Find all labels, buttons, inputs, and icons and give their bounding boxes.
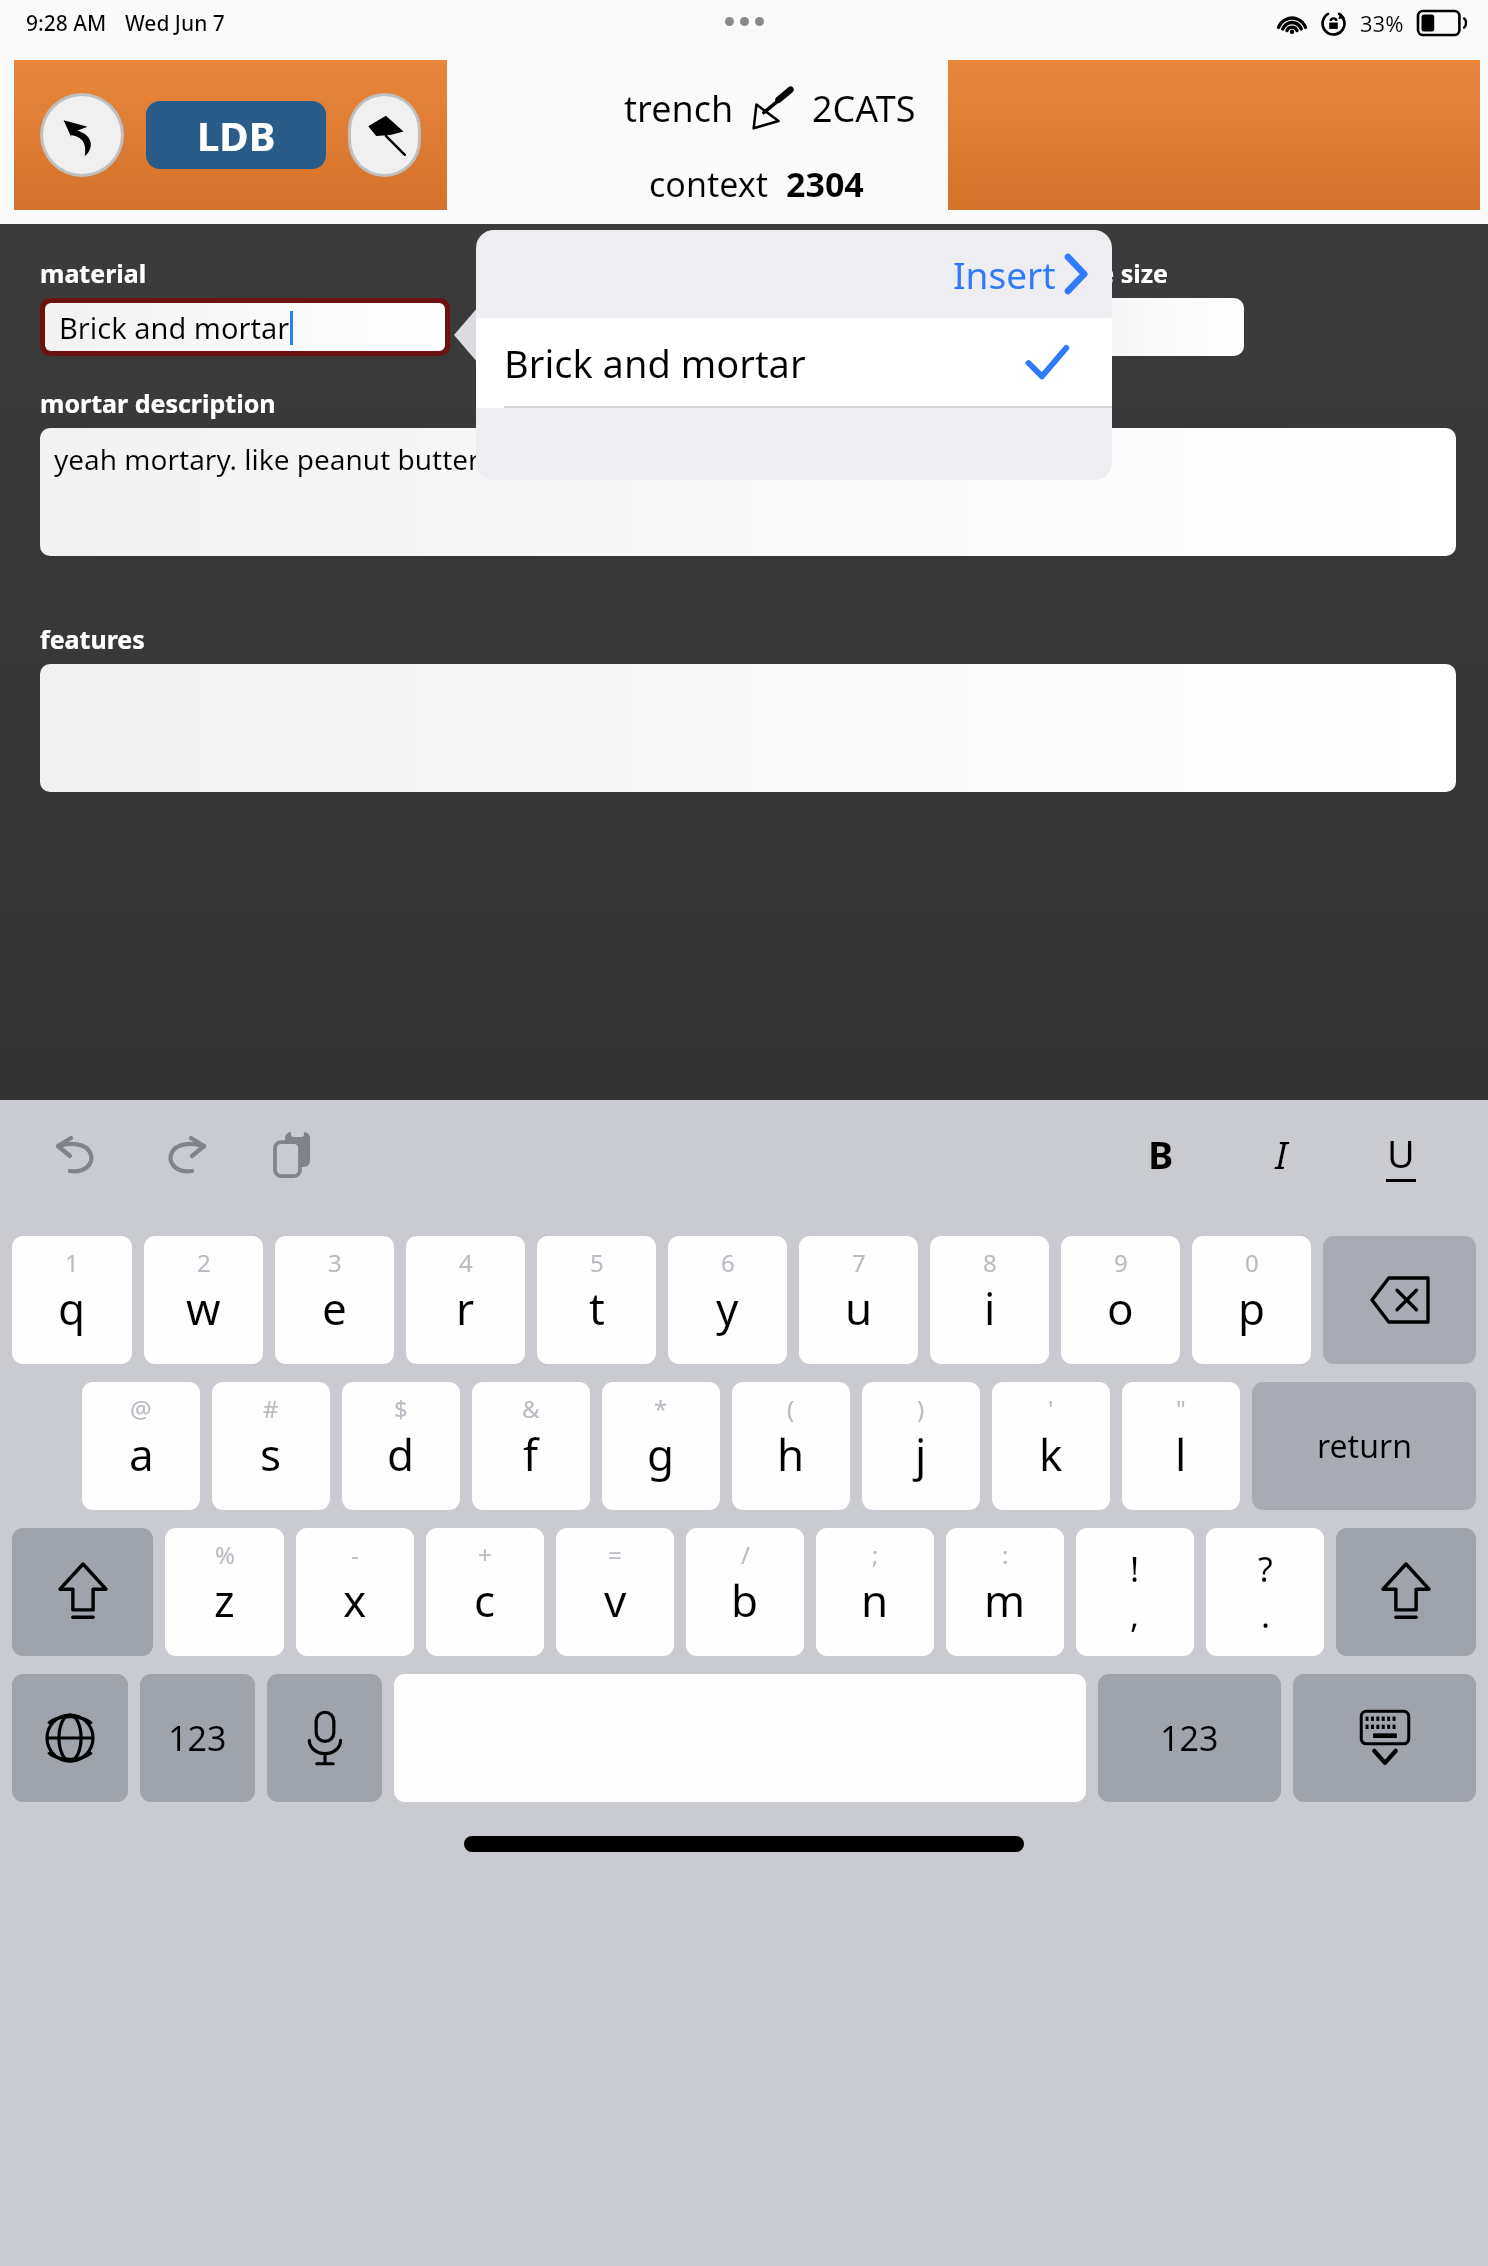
- staticText: q: [58, 1278, 86, 1338]
- button[interactable]: Pin: [351, 96, 418, 174]
- button[interactable]: ): [862, 1382, 980, 1510]
- staticText: g: [647, 1424, 675, 1484]
- staticText: 2: [197, 1246, 211, 1279]
- button[interactable]: 4: [406, 1236, 525, 1364]
- staticText: u: [845, 1278, 873, 1338]
- staticText: x: [343, 1570, 367, 1630]
- button[interactable]: ;: [816, 1528, 934, 1656]
- button[interactable]: [936, 298, 1036, 356]
- button[interactable]: Hide keyboard: [1293, 1674, 1476, 1802]
- staticText: stone size: [1044, 256, 1168, 290]
- staticText: w: [186, 1278, 221, 1338]
- button[interactable]: Undo: [46, 1123, 108, 1185]
- button[interactable]: Insert: [953, 249, 1086, 299]
- button[interactable]: [1044, 298, 1244, 356]
- staticText: features: [40, 622, 145, 656]
- button[interactable]: #: [212, 1382, 330, 1510]
- staticText: 0: [1245, 1246, 1259, 1279]
- staticText: ?: [1258, 1546, 1273, 1592]
- staticText: 2304: [786, 161, 864, 207]
- button[interactable]: :: [946, 1528, 1064, 1656]
- button[interactable]: LDB: [146, 101, 326, 169]
- staticText: U: [1387, 1127, 1415, 1179]
- button[interactable]: =: [556, 1528, 674, 1656]
- staticText: -: [351, 1538, 359, 1571]
- staticText: !: [1130, 1546, 1140, 1592]
- button[interactable]: 1: [12, 1236, 132, 1364]
- button[interactable]: 5: [537, 1236, 656, 1364]
- staticText: yeah mortary. like peanut butter: [54, 440, 480, 478]
- staticText: :: [1002, 1538, 1009, 1571]
- button[interactable]: B: [1130, 1123, 1192, 1185]
- button[interactable]: [40, 664, 1456, 792]
- button[interactable]: 7: [799, 1236, 918, 1364]
- button[interactable]: Brick and mortar: [476, 318, 1112, 408]
- staticText: *: [654, 1392, 668, 1425]
- button[interactable]: Paste: [262, 1123, 324, 1185]
- button[interactable]: ': [992, 1382, 1110, 1510]
- button[interactable]: @: [82, 1382, 200, 1510]
- staticText: v: [604, 1570, 627, 1630]
- staticText: 8: [983, 1246, 997, 1279]
- staticText: 9: [1114, 1246, 1128, 1279]
- button[interactable]: Redo: [154, 1123, 216, 1185]
- button[interactable]: I: [1250, 1123, 1312, 1185]
- button[interactable]: U: [1370, 1123, 1432, 1185]
- staticText: f: [523, 1424, 539, 1484]
- button[interactable]: 6: [668, 1236, 787, 1364]
- button[interactable]: Numbers: [1098, 1674, 1281, 1802]
- button[interactable]: [478, 298, 908, 356]
- button[interactable]: Shift: [1336, 1528, 1476, 1656]
- button[interactable]: $: [342, 1382, 460, 1510]
- button[interactable]: 9: [1061, 1236, 1180, 1364]
- staticText: h: [777, 1424, 805, 1484]
- staticText: +: [478, 1538, 492, 1571]
- staticText: Brick and mortar: [59, 308, 290, 347]
- button[interactable]: !: [1076, 1528, 1194, 1656]
- staticText: i: [984, 1278, 996, 1338]
- button[interactable]: +: [426, 1528, 544, 1656]
- button[interactable]: -: [296, 1528, 414, 1656]
- staticText: %: [215, 1538, 235, 1571]
- button[interactable]: Numbers: [140, 1674, 255, 1802]
- button[interactable]: yeah mortary. like peanut butter: [40, 428, 1456, 556]
- staticText: (: [787, 1392, 795, 1425]
- staticText: #: [263, 1392, 279, 1425]
- staticText: m: [984, 1570, 1026, 1630]
- staticText: e: [322, 1278, 347, 1338]
- staticText: Wed Jun 7: [125, 9, 225, 38]
- button[interactable]: 0: [1192, 1236, 1311, 1364]
- button[interactable]: 2: [144, 1236, 263, 1364]
- button[interactable]: ": [1122, 1382, 1240, 1510]
- staticText: ;: [872, 1538, 879, 1571]
- staticText: 2CATS: [812, 84, 916, 133]
- button[interactable]: %: [165, 1528, 284, 1656]
- staticText: ): [917, 1392, 925, 1425]
- staticText: trench: [624, 84, 734, 133]
- button[interactable]: Panel: [948, 60, 1480, 210]
- button[interactable]: *: [602, 1382, 720, 1510]
- button[interactable]: 3: [275, 1236, 394, 1364]
- staticText: 9:28 AM: [26, 9, 107, 38]
- staticText: 3: [328, 1246, 342, 1279]
- button[interactable]: 8: [930, 1236, 1049, 1364]
- staticText: l: [1175, 1424, 1187, 1484]
- button[interactable]: ?: [1206, 1528, 1324, 1656]
- staticText: @: [130, 1392, 152, 1425]
- button[interactable]: (: [732, 1382, 850, 1510]
- staticText: p: [1238, 1278, 1266, 1338]
- staticText: c: [474, 1570, 496, 1630]
- button[interactable]: Return: [1252, 1382, 1476, 1510]
- button[interactable]: Language: [12, 1674, 128, 1802]
- staticText: 4: [459, 1246, 473, 1279]
- button[interactable]: Back: [43, 96, 121, 174]
- button[interactable]: /: [686, 1528, 804, 1656]
- button[interactable]: Dictate: [267, 1674, 382, 1802]
- button[interactable]: Backspace: [1323, 1236, 1476, 1364]
- staticText: 6: [721, 1246, 735, 1279]
- button[interactable]: &: [472, 1382, 590, 1510]
- staticText: LDB: [197, 108, 276, 162]
- button[interactable]: Shift: [12, 1528, 153, 1656]
- button[interactable]: Brick and mortar: [45, 303, 445, 351]
